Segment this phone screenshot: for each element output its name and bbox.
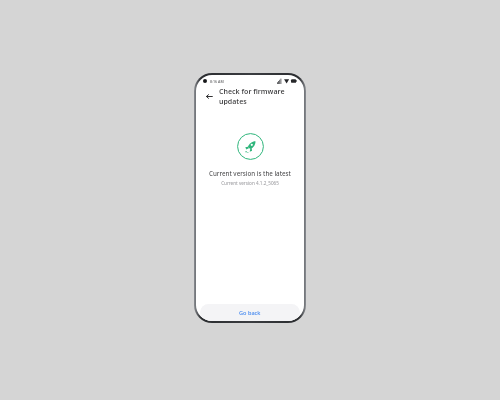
staticText: 8:16 AM [210, 79, 224, 84]
button[interactable]: Go back [200, 304, 300, 321]
staticText: Current version is the latest [209, 169, 291, 177]
button[interactable]: Back [203, 90, 215, 102]
staticText: Check for firmware updates [219, 87, 297, 105]
staticText: Go back [239, 309, 261, 317]
staticText: Current version 4.1.2_5065 [221, 180, 279, 186]
